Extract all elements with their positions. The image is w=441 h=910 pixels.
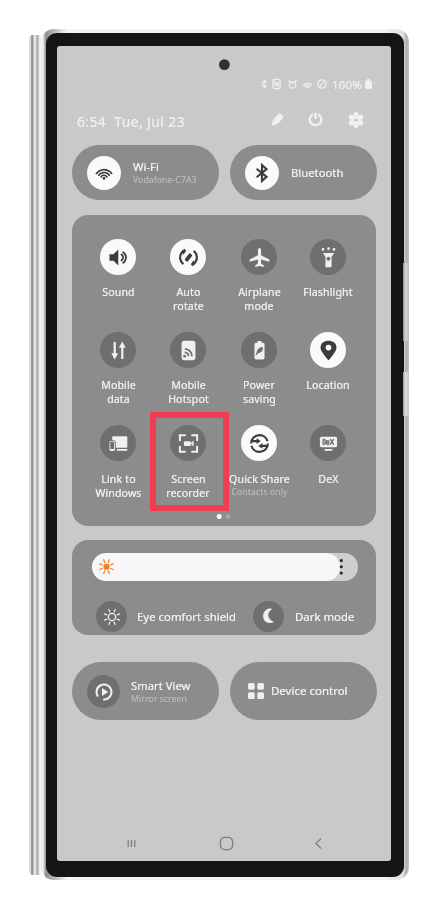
- button[interactable]: [151, 326, 225, 418]
- button[interactable]: [81, 326, 155, 418]
- staticText: Power: [243, 378, 275, 392]
- staticText: data: [107, 392, 130, 406]
- staticText: Location: [306, 378, 350, 392]
- staticText: Auto: [176, 285, 201, 299]
- staticText: Dark mode: [295, 609, 355, 624]
- staticText: Hotspot: [168, 392, 209, 406]
- button[interactable]: [151, 233, 225, 325]
- staticText: Mirror screen: [131, 693, 187, 705]
- button[interactable]: [151, 419, 225, 511]
- button[interactable]: Dark mode: [253, 599, 373, 634]
- staticText: Airplane: [238, 285, 281, 299]
- staticText: Wi-Fi: [133, 159, 159, 174]
- button[interactable]: Smart View: [72, 662, 219, 720]
- staticText: recorder: [166, 486, 210, 500]
- staticText: Flashlight: [303, 285, 353, 299]
- button[interactable]: Power: [303, 107, 328, 132]
- staticText: Device control: [271, 683, 348, 699]
- staticText: 100%: [332, 77, 363, 93]
- button[interactable]: Settings: [343, 107, 368, 132]
- staticText: Sound: [102, 285, 135, 299]
- button[interactable]: [81, 419, 155, 511]
- staticText: Contacts only: [231, 486, 288, 498]
- button[interactable]: [291, 233, 365, 325]
- staticText: mode: [244, 299, 274, 313]
- button[interactable]: Brightness: [92, 553, 358, 581]
- staticText: DeX: [318, 472, 339, 486]
- button[interactable]: [222, 326, 296, 418]
- staticText: 6:54 Tue, Jul 23: [77, 112, 185, 131]
- staticText: Eye comfort shield: [137, 609, 237, 624]
- staticText: Quick Share: [229, 472, 290, 486]
- staticText: Bluetooth: [291, 165, 344, 180]
- button[interactable]: Edit quick settings: [264, 107, 289, 132]
- button[interactable]: [222, 419, 296, 511]
- button[interactable]: Device control: [230, 662, 377, 720]
- staticText: saving: [243, 392, 276, 406]
- button[interactable]: Back: [298, 823, 338, 861]
- button[interactable]: [222, 233, 296, 325]
- staticText: Mobile: [171, 378, 206, 392]
- staticText: Smart View: [131, 678, 191, 693]
- staticText: Mobile: [101, 378, 136, 392]
- button[interactable]: Home: [206, 823, 246, 861]
- staticText: Screen: [171, 472, 206, 486]
- button[interactable]: Recent apps: [111, 823, 151, 861]
- staticText: Vodafone-C7A3: [133, 174, 197, 186]
- button[interactable]: Wi-Fi: [72, 145, 219, 200]
- button[interactable]: Eye comfort shield: [96, 599, 248, 634]
- staticText: rotate: [173, 299, 204, 313]
- staticText: Windows: [95, 486, 142, 500]
- button[interactable]: [81, 233, 155, 325]
- button[interactable]: Bluetooth: [230, 145, 377, 200]
- button[interactable]: [291, 326, 365, 418]
- staticText: Link to: [101, 472, 136, 486]
- button[interactable]: [291, 419, 365, 511]
